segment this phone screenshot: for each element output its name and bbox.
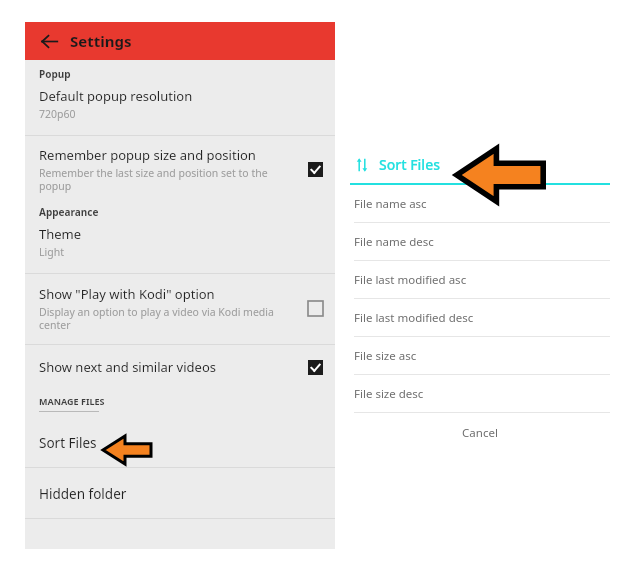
- staticText: Sort Files: [39, 434, 97, 452]
- staticText: File last modified asc: [354, 272, 467, 288]
- staticText: File size asc: [354, 348, 417, 364]
- staticText: Show "Play with Kodi" option: [39, 285, 215, 303]
- button[interactable]: Cancel: [350, 413, 610, 451]
- staticText: Theme: [39, 225, 82, 243]
- staticText: Remember the last size and position set …: [39, 166, 300, 193]
- other: Unchecked: [308, 301, 323, 316]
- button[interactable]: Sort Files: [25, 412, 335, 467]
- button[interactable]: Show "Play with Kodi" option: [25, 274, 335, 344]
- staticText: Light: [39, 245, 64, 259]
- button[interactable]: Back: [34, 26, 64, 56]
- button[interactable]: File last modified asc: [350, 261, 610, 298]
- staticText: Appearance: [39, 205, 99, 219]
- button[interactable]: Default popup resolution: [25, 87, 335, 121]
- staticText: File name desc: [354, 234, 434, 250]
- button[interactable]: File size asc: [350, 337, 610, 374]
- staticText: Remember popup size and position: [39, 146, 256, 164]
- button[interactable]: File name desc: [350, 223, 610, 260]
- button[interactable]: Remember popup size and position: [25, 136, 335, 205]
- button[interactable]: File name asc: [350, 185, 610, 222]
- staticText: File size desc: [354, 386, 424, 402]
- other: Checked: [308, 162, 323, 177]
- staticText: Default popup resolution: [39, 87, 193, 105]
- button[interactable]: File size desc: [350, 375, 610, 412]
- button[interactable]: Sort Files: [350, 155, 610, 183]
- button[interactable]: File last modified desc: [350, 299, 610, 336]
- staticText: Display an option to play a video via Ko…: [39, 305, 300, 332]
- staticText: File name asc: [354, 196, 427, 212]
- staticText: Sort Files: [379, 155, 440, 174]
- button[interactable]: Theme: [25, 225, 335, 259]
- staticText: Popup: [39, 67, 71, 81]
- staticText: Hidden folder: [39, 485, 127, 503]
- staticText: 720p60: [39, 107, 76, 121]
- button[interactable]: Hidden folder: [25, 468, 335, 518]
- staticText: Cancel: [462, 425, 498, 441]
- button[interactable]: Show next and similar videos: [25, 345, 335, 389]
- other: Checked: [308, 360, 323, 375]
- staticText: MANAGE FILES: [39, 395, 105, 407]
- staticText: File last modified desc: [354, 310, 474, 326]
- staticText: Settings: [70, 31, 132, 51]
- staticText: Show next and similar videos: [39, 358, 216, 376]
